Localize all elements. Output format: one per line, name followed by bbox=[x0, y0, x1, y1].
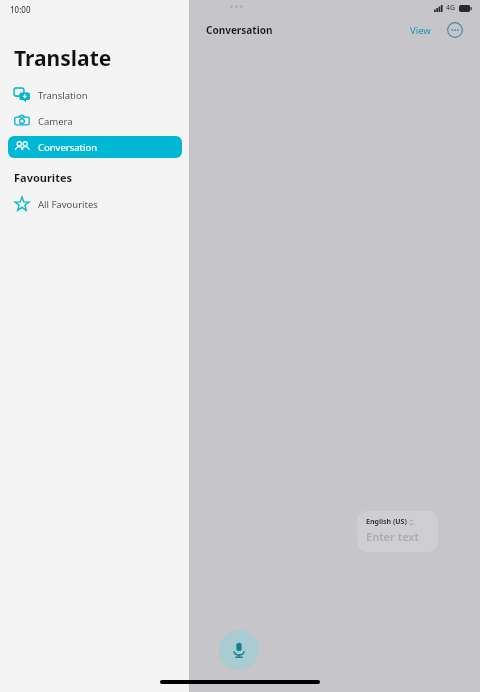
staticText: English (US) bbox=[366, 517, 407, 527]
staticText: Conversation bbox=[206, 23, 273, 37]
staticText: Translation bbox=[38, 89, 88, 102]
button[interactable]: Conversation bbox=[8, 136, 182, 158]
staticText: All Favourites bbox=[38, 198, 98, 211]
button[interactable]: English (US) bbox=[357, 511, 438, 552]
staticText: Camera bbox=[38, 115, 73, 128]
button[interactable]: Camera bbox=[8, 110, 182, 132]
button[interactable]: Translation bbox=[8, 84, 182, 106]
button[interactable]: View bbox=[407, 22, 434, 39]
button[interactable]: More options bbox=[446, 21, 464, 39]
staticText: Enter text bbox=[366, 529, 419, 544]
staticText: Conversation bbox=[38, 141, 98, 154]
staticText: View bbox=[410, 24, 431, 37]
staticText: 4G bbox=[446, 3, 456, 13]
staticText: Favourites bbox=[14, 170, 73, 185]
button[interactable]: All Favourites bbox=[8, 193, 182, 215]
staticText: 10:00 bbox=[10, 4, 31, 15]
button[interactable]: Microphone bbox=[219, 630, 259, 670]
staticText: Translate bbox=[14, 44, 112, 73]
